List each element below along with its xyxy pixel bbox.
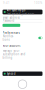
- staticText: Email address: [2, 16, 19, 19]
- staticText: Synced: [7, 72, 16, 75]
- staticText: Notifications: [2, 34, 13, 41]
- staticText: All systems go: [7, 8, 26, 12]
- button[interactable]: Continue: [2, 24, 20, 27]
- staticText: Last synced just now: [7, 12, 34, 16]
- staticText: Your Account: [2, 44, 20, 47]
- staticText: Password: [2, 19, 14, 22]
- staticText: 100%: [34, 1, 42, 5]
- staticText: 9:41: [3, 1, 10, 5]
- staticText: Preferences: [2, 31, 19, 35]
- staticText: Manage your subscription and billing: [2, 49, 25, 60]
